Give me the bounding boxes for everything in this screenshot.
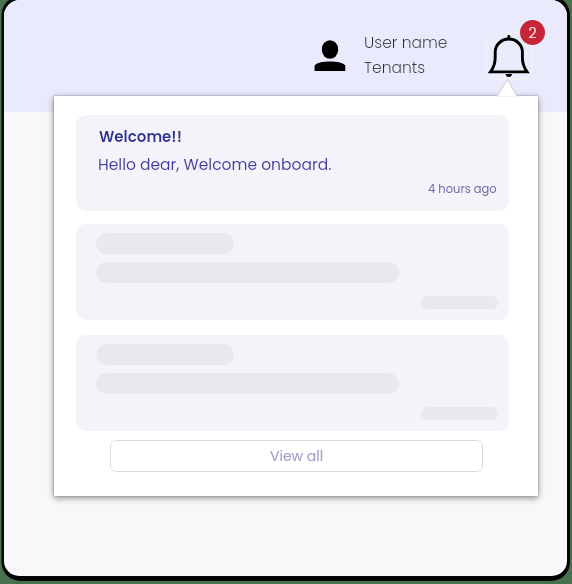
staticText: View all: [270, 446, 324, 466]
button[interactable]: [76, 335, 509, 431]
staticText: User name: [364, 32, 448, 54]
staticText: 4 hours ago: [428, 181, 497, 197]
button[interactable]: [76, 224, 509, 320]
staticText: Tenants: [364, 57, 426, 79]
button[interactable]: Notifications: [485, 32, 533, 80]
staticText: 2: [528, 23, 537, 43]
button[interactable]: Welcome!!: [76, 115, 509, 211]
staticText: Welcome!!: [99, 126, 182, 147]
staticText: Hello dear, Welcome onboard.: [98, 154, 332, 176]
button[interactable]: View all: [110, 440, 483, 472]
